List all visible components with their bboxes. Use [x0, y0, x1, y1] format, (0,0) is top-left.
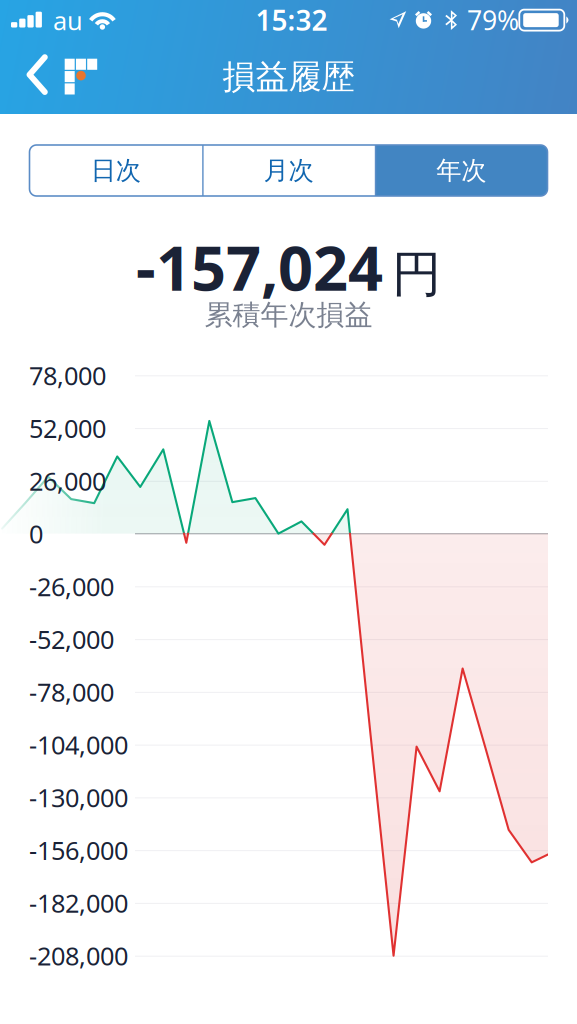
staticText: -104,000: [29, 728, 128, 761]
staticText: 月次: [263, 155, 313, 186]
staticText: -208,000: [29, 939, 128, 972]
staticText: -26,000: [29, 569, 114, 603]
staticText: 79%: [467, 2, 519, 38]
staticText: 日次: [91, 155, 141, 186]
staticText: -157,024: [136, 226, 383, 308]
staticText: -52,000: [29, 622, 114, 656]
staticText: -130,000: [29, 781, 128, 814]
staticText: -78,000: [29, 675, 114, 709]
button[interactable]: 年次: [375, 145, 547, 196]
staticText: 52,000: [29, 411, 106, 445]
staticText: 累積年次損益: [204, 298, 372, 332]
staticText: 26,000: [29, 464, 106, 498]
staticText: 円: [392, 244, 441, 305]
staticText: -182,000: [29, 886, 128, 920]
button[interactable]: 日次: [29, 145, 202, 196]
button[interactable]: 月次: [202, 145, 375, 196]
staticText: au: [53, 4, 83, 37]
staticText: 損益履歴: [222, 56, 354, 97]
staticText: -156,000: [29, 833, 128, 867]
staticText: 年次: [436, 155, 486, 186]
staticText: 78,000: [29, 358, 106, 392]
staticText: 0: [29, 517, 43, 550]
staticText: 15:32: [255, 1, 327, 39]
button[interactable]: Back: [0, 40, 112, 114]
